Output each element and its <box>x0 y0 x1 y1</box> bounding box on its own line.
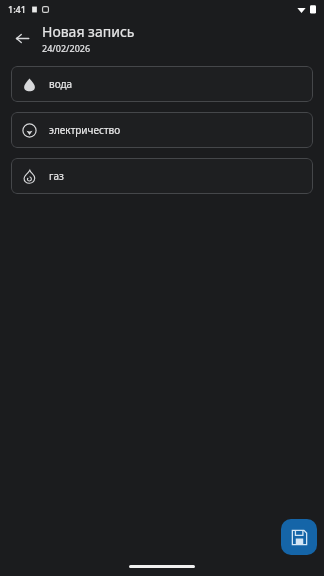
staticText: электричество <box>49 123 121 137</box>
button[interactable]: Back <box>6 22 38 54</box>
button[interactable]: вода <box>11 66 313 102</box>
button[interactable]: Save <box>281 519 317 555</box>
staticText: газ <box>49 169 64 183</box>
staticText: Новая запись <box>42 22 135 41</box>
staticText: 1:41 <box>8 3 26 15</box>
button[interactable]: газ <box>11 158 313 194</box>
staticText: 24/02/2026 <box>42 42 91 54</box>
button[interactable]: электричество <box>11 112 313 148</box>
staticText: вода <box>49 77 73 91</box>
